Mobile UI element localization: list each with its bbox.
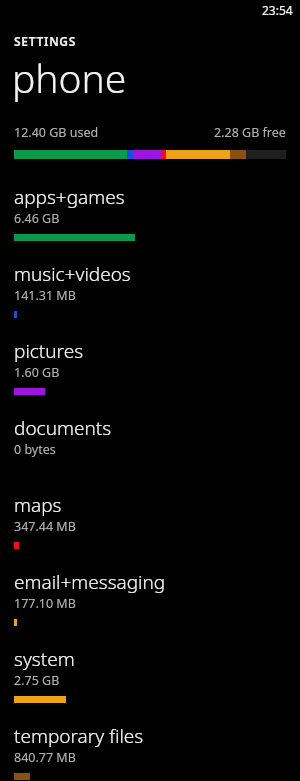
staticText: SETTINGS (14, 33, 77, 49)
button[interactable]: temporary files (0, 723, 300, 780)
button[interactable]: pictures (0, 338, 300, 395)
staticText: 0 bytes (14, 441, 56, 458)
staticText: 347.44 MB (14, 518, 76, 535)
staticText: 840.77 MB (14, 749, 76, 766)
staticText: apps+games (14, 184, 125, 210)
staticText: pictures (14, 338, 84, 364)
staticText: 23:54 (262, 2, 293, 18)
button[interactable]: system (0, 646, 300, 703)
button[interactable]: documents (0, 415, 300, 472)
staticText: 1.60 GB (14, 364, 60, 381)
button[interactable]: maps (0, 492, 300, 549)
staticText: 6.46 GB (14, 210, 60, 227)
button[interactable]: email+messaging (0, 569, 300, 626)
staticText: maps (14, 492, 62, 518)
staticText: system (14, 646, 75, 672)
staticText: temporary files (14, 723, 144, 749)
staticText: music+videos (14, 261, 131, 287)
staticText: 12.40 GB used (14, 124, 99, 141)
button[interactable]: music+videos (0, 261, 300, 318)
staticText: 2.28 GB free (214, 124, 286, 141)
button[interactable]: apps+games (0, 184, 300, 241)
staticText: 2.75 GB (14, 672, 60, 689)
staticText: 141.31 MB (14, 287, 76, 304)
staticText: email+messaging (14, 569, 166, 595)
staticText: documents (14, 415, 112, 441)
staticText: 177.10 MB (14, 595, 76, 612)
staticText: phone (12, 51, 127, 104)
